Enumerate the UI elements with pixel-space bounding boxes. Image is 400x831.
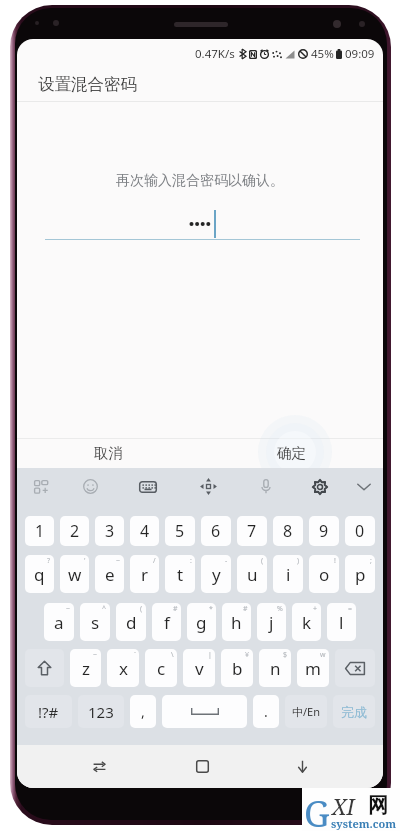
staticText: 7 xyxy=(247,520,257,542)
button[interactable]: f xyxy=(152,603,181,641)
staticText: d xyxy=(126,611,137,634)
staticText: 0.47K/s xyxy=(195,46,235,62)
button[interactable]: o xyxy=(309,555,339,593)
button[interactable]: Home xyxy=(182,745,222,788)
staticText: w xyxy=(320,650,326,660)
button[interactable]: u xyxy=(237,555,267,593)
staticText: 3 xyxy=(105,520,115,542)
button[interactable]: Space xyxy=(162,695,247,728)
staticText: 设置混合密码 xyxy=(38,74,137,95)
button[interactable]: e xyxy=(95,555,124,593)
staticText: ~ xyxy=(66,604,71,614)
button[interactable]: Emoji xyxy=(64,468,117,505)
staticText: r xyxy=(141,563,149,586)
button[interactable]: More xyxy=(345,468,383,505)
button[interactable]: 6 xyxy=(201,516,231,546)
staticText: 确定 xyxy=(277,444,306,462)
button[interactable]: s xyxy=(80,603,110,641)
staticText: v xyxy=(195,657,204,680)
button[interactable]: Backspace xyxy=(335,649,375,687)
staticText: # xyxy=(173,604,178,614)
button[interactable]: y xyxy=(201,555,231,593)
button[interactable]: l xyxy=(327,603,356,641)
staticText: ' xyxy=(84,556,86,566)
button[interactable]: Settings xyxy=(295,468,345,505)
button[interactable]: h xyxy=(222,603,251,641)
button[interactable]: 3 xyxy=(95,516,124,546)
button[interactable]: p xyxy=(345,555,375,593)
staticText: 1 xyxy=(35,520,45,542)
button[interactable]: 4 xyxy=(130,516,159,546)
staticText: 网 xyxy=(368,793,388,818)
button[interactable]: 5 xyxy=(165,516,195,546)
staticText: * xyxy=(209,604,213,614)
staticText: h xyxy=(231,611,242,634)
staticText: % xyxy=(277,604,283,614)
button[interactable]: 取消 xyxy=(17,438,200,468)
staticText: 完成 xyxy=(341,704,367,720)
button[interactable]: 完成 xyxy=(333,695,375,728)
button[interactable]: r xyxy=(130,555,159,593)
button[interactable]: m xyxy=(297,649,329,687)
button[interactable]: a xyxy=(44,603,74,641)
button[interactable]: w xyxy=(60,555,89,593)
button[interactable]: b xyxy=(221,649,253,687)
button[interactable]: 7 xyxy=(237,516,267,546)
button[interactable]: !?# xyxy=(25,695,72,728)
button[interactable]: c xyxy=(145,649,177,687)
staticText: 45% xyxy=(311,46,334,62)
button[interactable]: 2 xyxy=(60,516,89,546)
staticText: ( xyxy=(261,556,264,566)
staticText: 取消 xyxy=(94,444,123,462)
staticText: 123 xyxy=(88,702,114,722)
staticText: ? xyxy=(47,556,51,566)
button[interactable]: 1 xyxy=(25,516,54,546)
staticText: , xyxy=(141,702,145,721)
button[interactable]: t xyxy=(165,555,195,593)
staticText: u xyxy=(247,563,258,586)
staticText: ` xyxy=(134,650,136,660)
staticText: g xyxy=(196,611,207,634)
button[interactable]: Keyboard mode xyxy=(117,468,179,505)
button[interactable]: 123 xyxy=(78,695,124,728)
button[interactable]: Recent apps xyxy=(17,745,182,788)
staticText: k xyxy=(302,611,312,634)
button[interactable]: 9 xyxy=(309,516,339,546)
button[interactable]: 0 xyxy=(345,516,375,546)
staticText: 再次输入混合密码以确认。 xyxy=(116,172,284,190)
button[interactable]: Voice input xyxy=(237,468,295,505)
staticText: !?# xyxy=(38,702,59,722)
button[interactable]: k xyxy=(292,603,321,641)
staticText: 6 xyxy=(211,520,221,542)
staticText: 0 xyxy=(355,520,365,542)
button[interactable]: n xyxy=(259,649,291,687)
staticText: XI xyxy=(332,791,355,821)
button[interactable]: q xyxy=(25,555,54,593)
button[interactable]: i xyxy=(273,555,303,593)
button[interactable]: 8 xyxy=(273,516,303,546)
button[interactable]: Keyboard layouts xyxy=(17,468,64,505)
staticText: z xyxy=(82,657,90,680)
button[interactable]: x xyxy=(107,649,139,687)
button[interactable]: Shift xyxy=(25,649,64,687)
staticText: t xyxy=(177,563,184,586)
staticText: n xyxy=(270,657,281,680)
button[interactable]: Hide keyboard xyxy=(222,745,383,788)
button[interactable]: 中/En xyxy=(285,695,327,728)
staticText: p xyxy=(355,563,366,586)
staticText: m xyxy=(305,657,321,680)
button[interactable]: z xyxy=(70,649,101,687)
button[interactable]: 确定 xyxy=(200,438,383,468)
button[interactable]: , xyxy=(130,695,156,728)
button[interactable]: j xyxy=(257,603,286,641)
staticText: i xyxy=(286,563,291,586)
button[interactable]: g xyxy=(187,603,216,641)
staticText: + xyxy=(313,604,318,614)
button[interactable]: Move cursor xyxy=(179,468,237,505)
staticText: x xyxy=(119,657,128,680)
button[interactable]: . xyxy=(253,695,279,728)
button[interactable]: d xyxy=(116,603,146,641)
staticText: q xyxy=(34,563,45,586)
button[interactable]: v xyxy=(183,649,215,687)
staticText: 4 xyxy=(140,520,150,542)
